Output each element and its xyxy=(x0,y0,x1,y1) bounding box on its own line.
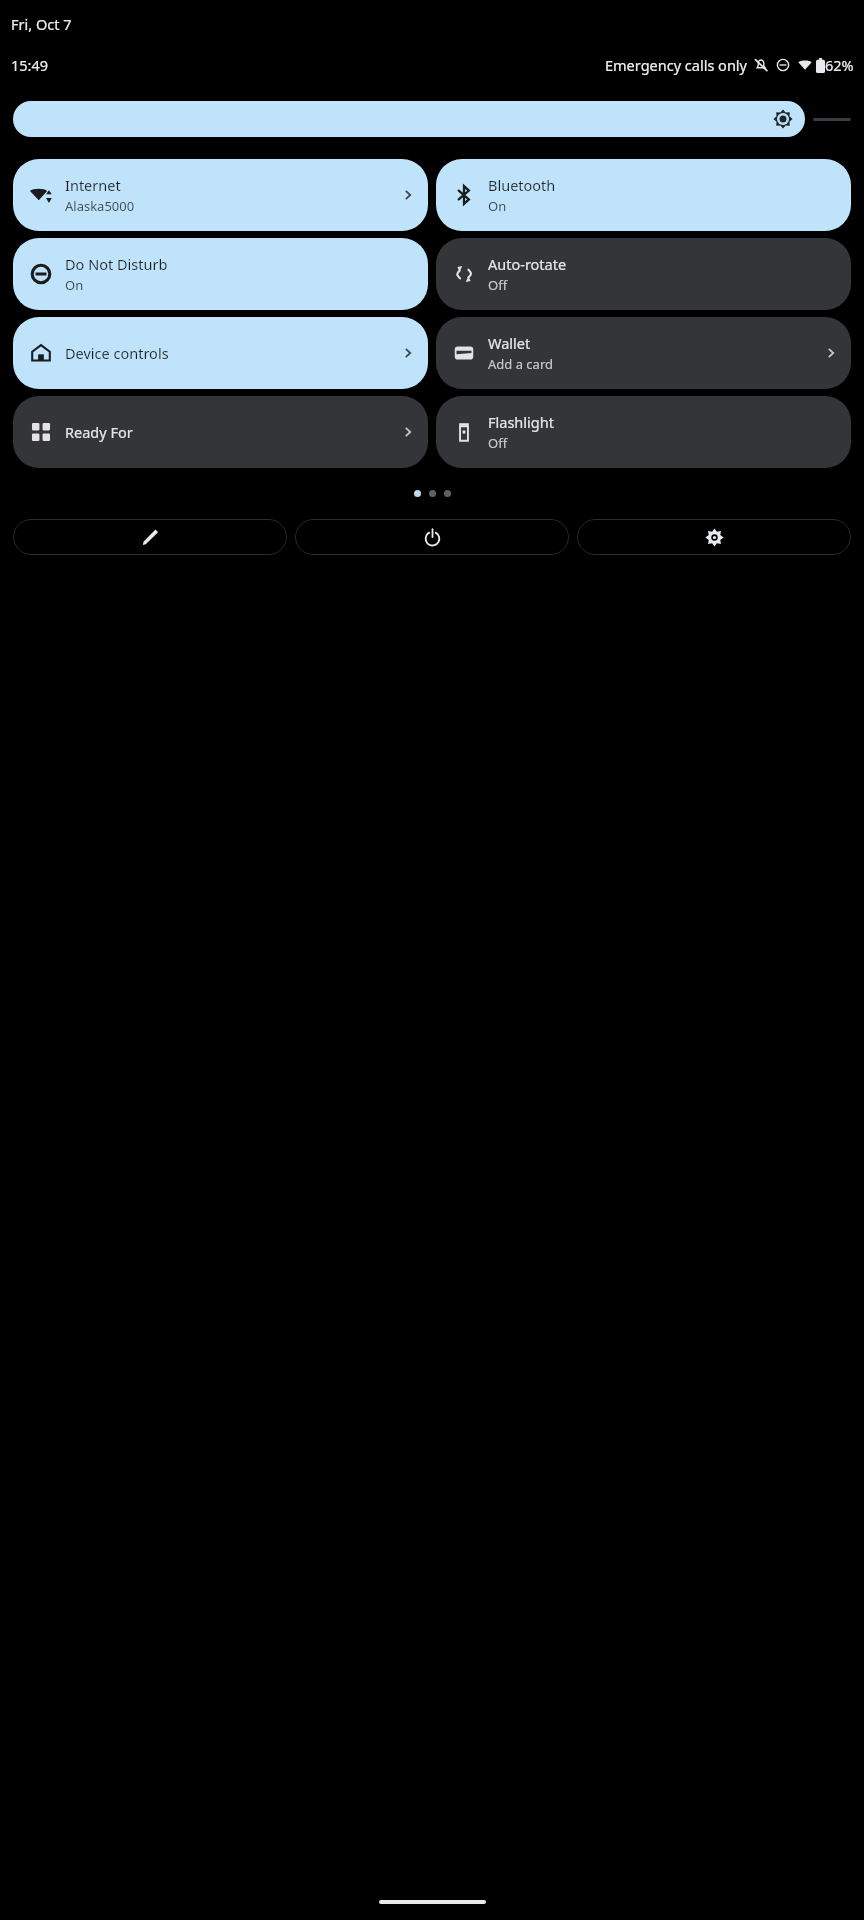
staticText: 62% xyxy=(825,55,854,75)
button[interactable]: Internet xyxy=(13,159,428,231)
button[interactable]: Flashlight xyxy=(436,396,851,468)
button[interactable]: Power xyxy=(295,519,569,555)
button[interactable]: Edit xyxy=(13,519,287,555)
staticText: Emergency calls only xyxy=(605,55,747,75)
staticText: Do Not Disturb xyxy=(65,254,168,274)
staticText: Wallet xyxy=(488,333,531,353)
button[interactable]: Bluetooth xyxy=(436,159,851,231)
staticText: 15:49 xyxy=(11,55,49,75)
staticText: On xyxy=(65,276,84,294)
staticText: Alaska5000 xyxy=(65,197,135,215)
button[interactable]: Ready For xyxy=(13,396,428,468)
staticText: On xyxy=(488,197,507,215)
staticText: Add a card xyxy=(488,355,553,373)
button[interactable]: Wallet xyxy=(436,317,851,389)
staticText: Off xyxy=(488,276,508,294)
button[interactable]: Device controls xyxy=(13,317,428,389)
button[interactable]: Do Not Disturb xyxy=(13,238,428,310)
staticText: Flashlight xyxy=(488,412,554,432)
button[interactable]: Settings xyxy=(577,519,851,555)
staticText: Off xyxy=(488,434,508,452)
staticText: Ready For xyxy=(65,422,133,442)
staticText: Device controls xyxy=(65,343,169,363)
staticText: Internet xyxy=(65,175,121,195)
button[interactable]: Brightness xyxy=(13,101,805,137)
staticText: Auto-rotate xyxy=(488,254,567,274)
staticText: Bluetooth xyxy=(488,175,556,195)
button[interactable]: Auto-rotate xyxy=(436,238,851,310)
staticText: Fri, Oct 7 xyxy=(11,14,72,34)
